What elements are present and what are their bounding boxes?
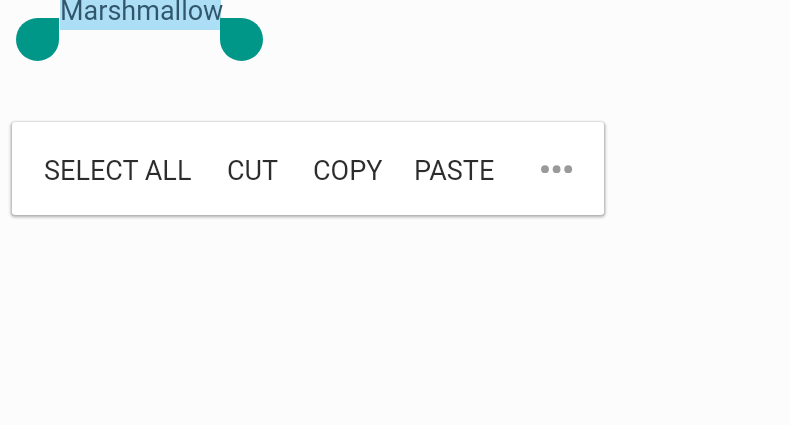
staticText: COPY bbox=[313, 155, 383, 187]
staticText: CUT bbox=[227, 155, 279, 187]
staticText: SELECT ALL bbox=[44, 155, 192, 187]
button[interactable]: More options bbox=[512, 122, 596, 215]
button[interactable]: PASTE bbox=[414, 122, 495, 215]
button[interactable]: CUT bbox=[227, 122, 279, 215]
button[interactable]: Selection start handle bbox=[16, 18, 59, 61]
staticText: Marshmallow bbox=[60, 0, 224, 27]
button[interactable]: COPY bbox=[313, 122, 383, 215]
button[interactable]: Selection end handle bbox=[220, 18, 263, 61]
button[interactable]: SELECT ALL bbox=[44, 122, 192, 215]
staticText: PASTE bbox=[414, 155, 495, 187]
